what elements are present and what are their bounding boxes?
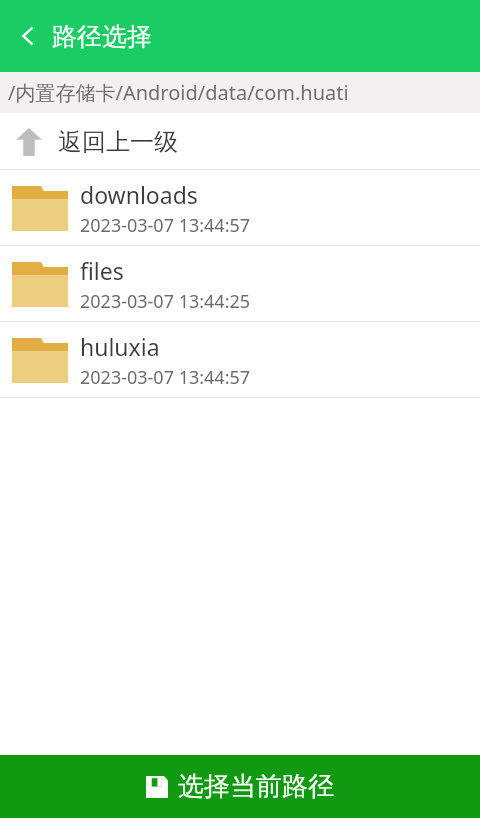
- button[interactable]: files: [0, 246, 480, 322]
- staticText: 返回上一级: [58, 127, 178, 157]
- staticText: 路径选择: [52, 21, 152, 52]
- button[interactable]: huluxia: [0, 322, 480, 398]
- button[interactable]: downloads: [0, 170, 480, 246]
- staticText: 2023-03-07 13:44:25: [80, 289, 251, 314]
- staticText: 2023-03-07 13:44:57: [80, 365, 251, 390]
- staticText: files: [80, 255, 124, 286]
- staticText: 2023-03-07 13:44:57: [80, 213, 251, 238]
- staticText: huluxia: [80, 331, 160, 362]
- button[interactable]: 选择当前路径: [0, 755, 480, 818]
- staticText: /内置存储卡/Android/data/com.huati: [8, 79, 349, 106]
- button[interactable]: 返回上一级: [0, 113, 480, 170]
- staticText: 选择当前路径: [178, 770, 334, 803]
- staticText: downloads: [80, 179, 198, 210]
- button[interactable]: Back: [6, 14, 50, 58]
